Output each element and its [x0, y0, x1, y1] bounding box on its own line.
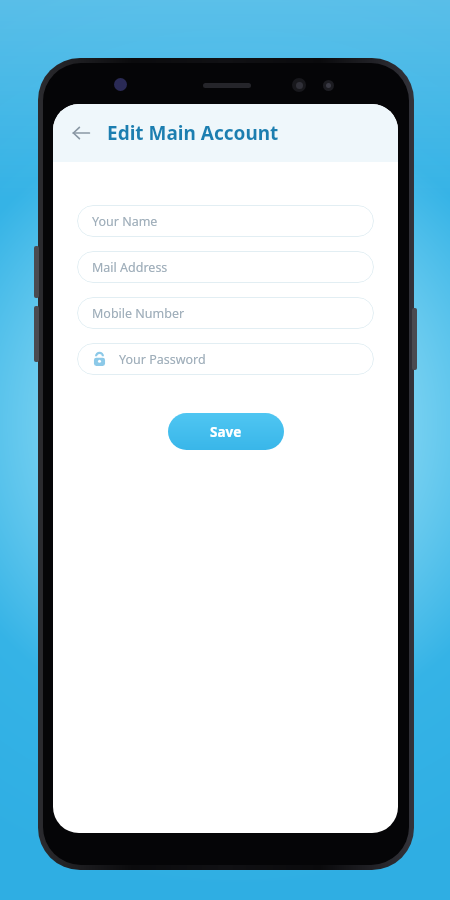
button[interactable]: Mobile Number — [77, 297, 374, 329]
staticText: Mobile Number — [92, 305, 185, 322]
staticText: Save — [210, 423, 242, 441]
button[interactable]: Save — [168, 413, 284, 450]
staticText: Your Password — [119, 351, 206, 368]
staticText: Your Name — [92, 213, 158, 230]
staticText: Mail Address — [92, 259, 168, 276]
button[interactable]: Your Password — [77, 343, 374, 375]
button[interactable]: Mail Address — [77, 251, 374, 283]
button[interactable]: Your Name — [77, 205, 374, 237]
button[interactable]: Back — [63, 115, 99, 151]
staticText: Edit Main Account — [107, 120, 279, 146]
